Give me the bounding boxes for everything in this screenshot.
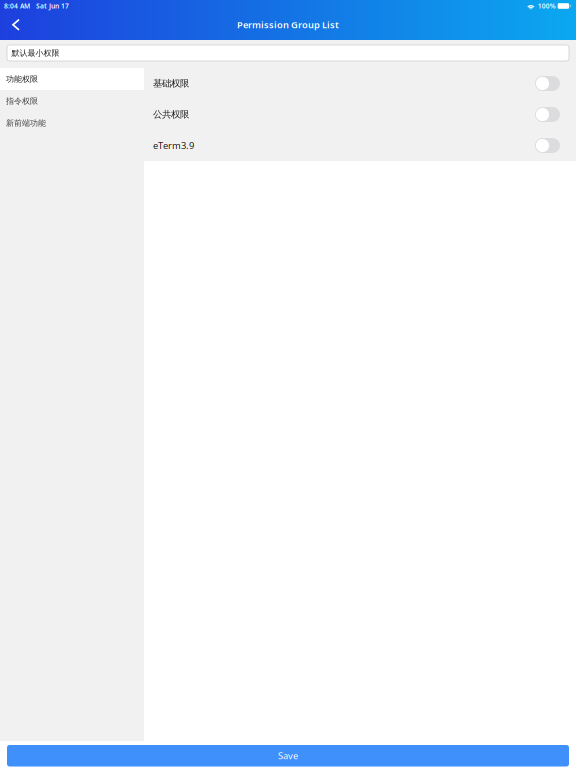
staticText: 公共权限: [153, 109, 189, 120]
staticText: 基础权限: [153, 78, 189, 89]
staticText: 100%: [538, 2, 556, 10]
button[interactable]: 新前端功能: [0, 112, 144, 134]
staticText: Sat Jun 17: [36, 2, 69, 10]
button[interactable]: 指令权限: [0, 90, 144, 112]
staticText: 默认最小权限: [11, 48, 59, 58]
button[interactable]: 基础权限: [144, 68, 576, 99]
staticText: 新前端功能: [6, 118, 46, 128]
staticText: Permission Group List: [237, 19, 339, 31]
staticText: 8:04 AM: [4, 2, 30, 10]
staticText: 功能权限: [6, 74, 38, 84]
staticText: Save: [278, 750, 298, 762]
button[interactable]: Save: [0, 741, 576, 768]
staticText: 指令权限: [6, 96, 38, 106]
button[interactable]: eTerm3.9: [144, 130, 576, 161]
staticText: eTerm3.9: [153, 139, 194, 152]
button[interactable]: 公共权限: [144, 99, 576, 130]
button[interactable]: 功能权限: [0, 68, 144, 90]
button[interactable]: 默认最小权限: [0, 40, 576, 62]
button[interactable]: Back: [4, 12, 28, 38]
